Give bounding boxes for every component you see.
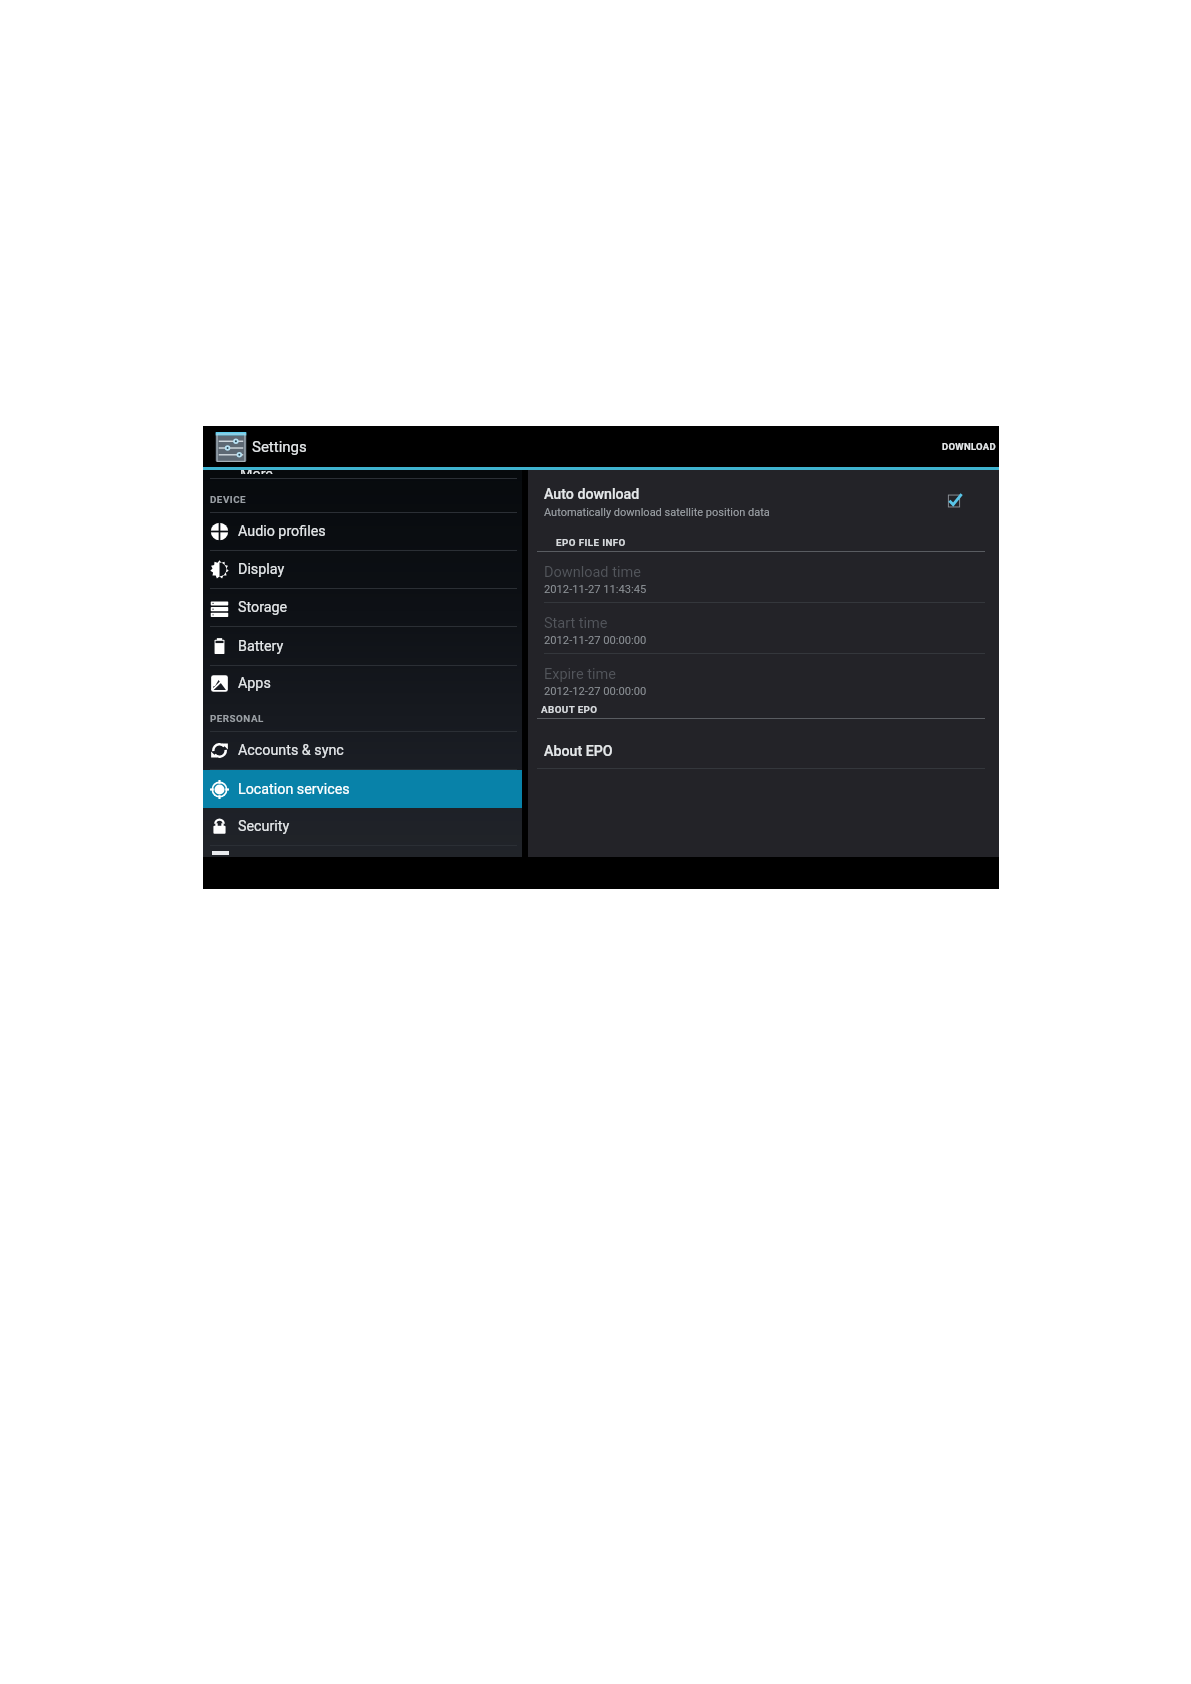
button[interactable]: Auto download enabled — [946, 492, 963, 509]
staticText: DEVICE — [210, 494, 247, 505]
staticText: ABOUT EPO — [541, 704, 598, 715]
staticText: Accounts & sync — [238, 742, 344, 759]
button[interactable] — [203, 846, 522, 857]
staticText: Start time — [544, 615, 608, 632]
staticText: Storage — [238, 599, 288, 616]
staticText: 2012-12-27 00:00:00 — [544, 685, 647, 698]
button[interactable]: Download time — [537, 552, 985, 603]
staticText: Download time — [544, 564, 641, 581]
button[interactable]: Settings — [214, 430, 248, 464]
button[interactable]: Expire time — [537, 654, 985, 704]
staticText: Automatically download satellite positio… — [544, 506, 770, 519]
button[interactable]: Audio profiles — [203, 513, 522, 550]
button[interactable]: More... — [203, 470, 522, 478]
button[interactable]: Location services — [203, 770, 522, 808]
button[interactable]: Storage — [203, 589, 522, 626]
button[interactable]: DOWNLOAD — [934, 433, 999, 460]
button[interactable]: Battery — [203, 627, 522, 665]
button[interactable]: About EPO — [537, 743, 985, 760]
staticText: Battery — [238, 638, 284, 655]
staticText: Apps — [238, 675, 271, 692]
button[interactable]: Security — [203, 808, 522, 845]
staticText: Settings — [252, 438, 307, 456]
staticText: Expire time — [544, 666, 616, 683]
staticText: Display — [238, 561, 285, 578]
button[interactable]: Display — [203, 551, 522, 588]
staticText: Security — [238, 818, 290, 835]
staticText: More... — [240, 466, 285, 474]
staticText: 2012-11-27 11:43:45 — [544, 583, 647, 596]
button[interactable]: Start time — [537, 603, 985, 654]
button[interactable]: Auto download — [537, 486, 985, 519]
button[interactable]: Apps — [203, 666, 522, 701]
staticText: Location services — [238, 781, 350, 798]
staticText: Auto download — [544, 486, 640, 503]
button[interactable]: Accounts & sync — [203, 732, 522, 769]
staticText: DOWNLOAD — [942, 441, 997, 452]
staticText: About EPO — [544, 743, 613, 760]
staticText: 2012-11-27 00:00:00 — [544, 634, 647, 647]
staticText: Audio profiles — [238, 523, 326, 540]
staticText: PERSONAL — [210, 713, 264, 724]
staticText: EPO FILE INFO — [556, 537, 626, 548]
